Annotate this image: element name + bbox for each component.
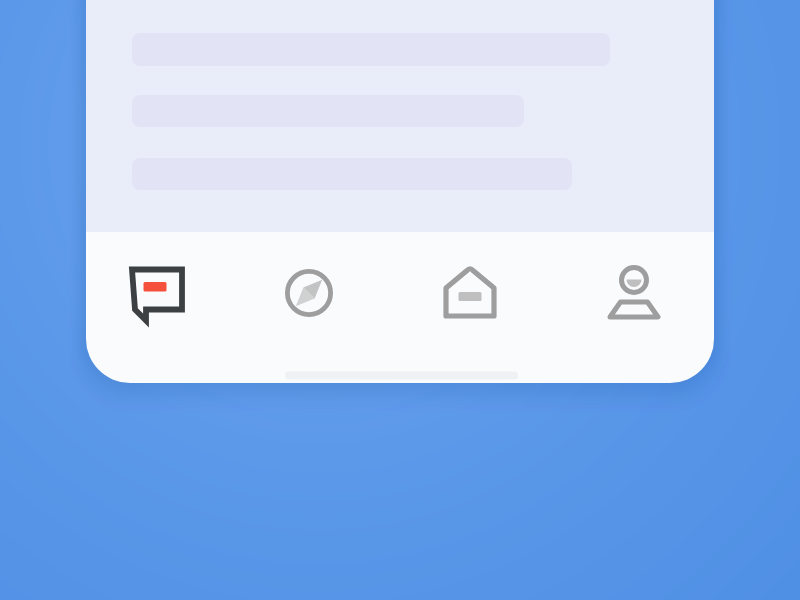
button[interactable]: Messages — [107, 243, 207, 343]
button[interactable]: Profile — [584, 243, 684, 343]
button[interactable]: Home — [420, 243, 520, 343]
button[interactable]: Explore — [259, 243, 359, 343]
